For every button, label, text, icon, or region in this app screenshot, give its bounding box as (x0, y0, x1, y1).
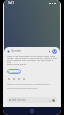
button[interactable]: Attach (48, 99, 51, 102)
button[interactable]: Dislike (12, 77, 15, 80)
staticText: Gemini can make mistakes, so double-chec… (7, 83, 51, 86)
staticText: Here is an overview of the latest news f… (7, 54, 57, 66)
button[interactable]: More options (47, 49, 51, 53)
button[interactable]: Account (52, 49, 57, 54)
staticText: 9:41 (8, 1, 14, 5)
button[interactable]: Copy (22, 77, 25, 80)
button[interactable]: Voice input (52, 99, 55, 102)
button[interactable]: Like (7, 77, 10, 80)
button[interactable]: Ask Gemini (7, 97, 57, 103)
button[interactable]: Sources (7, 69, 21, 74)
staticText: Sources (11, 70, 20, 73)
staticText: Ask Gemini (12, 98, 26, 102)
button[interactable]: Share (17, 77, 20, 80)
button[interactable]: Home (30, 109, 34, 113)
staticText: and use information responsibly. (7, 87, 38, 90)
button[interactable]: Gemini (7, 48, 57, 54)
staticText: Gemini (11, 49, 22, 53)
